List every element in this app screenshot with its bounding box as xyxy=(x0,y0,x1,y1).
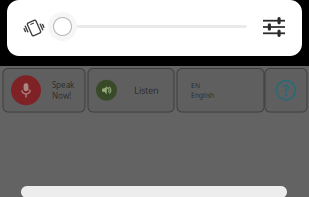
staticText: English xyxy=(191,91,214,100)
button[interactable]: Speak Now! xyxy=(3,68,85,112)
button[interactable]: EN xyxy=(177,68,264,112)
staticText: Listen xyxy=(134,84,159,96)
button[interactable]: Listen xyxy=(88,68,174,112)
button[interactable]: Help xyxy=(265,68,307,112)
button[interactable]: Shake to translate xyxy=(15,9,53,47)
staticText: Speak Now! xyxy=(52,80,74,101)
button[interactable]: Settings xyxy=(254,7,294,47)
staticText: EN xyxy=(191,81,200,90)
